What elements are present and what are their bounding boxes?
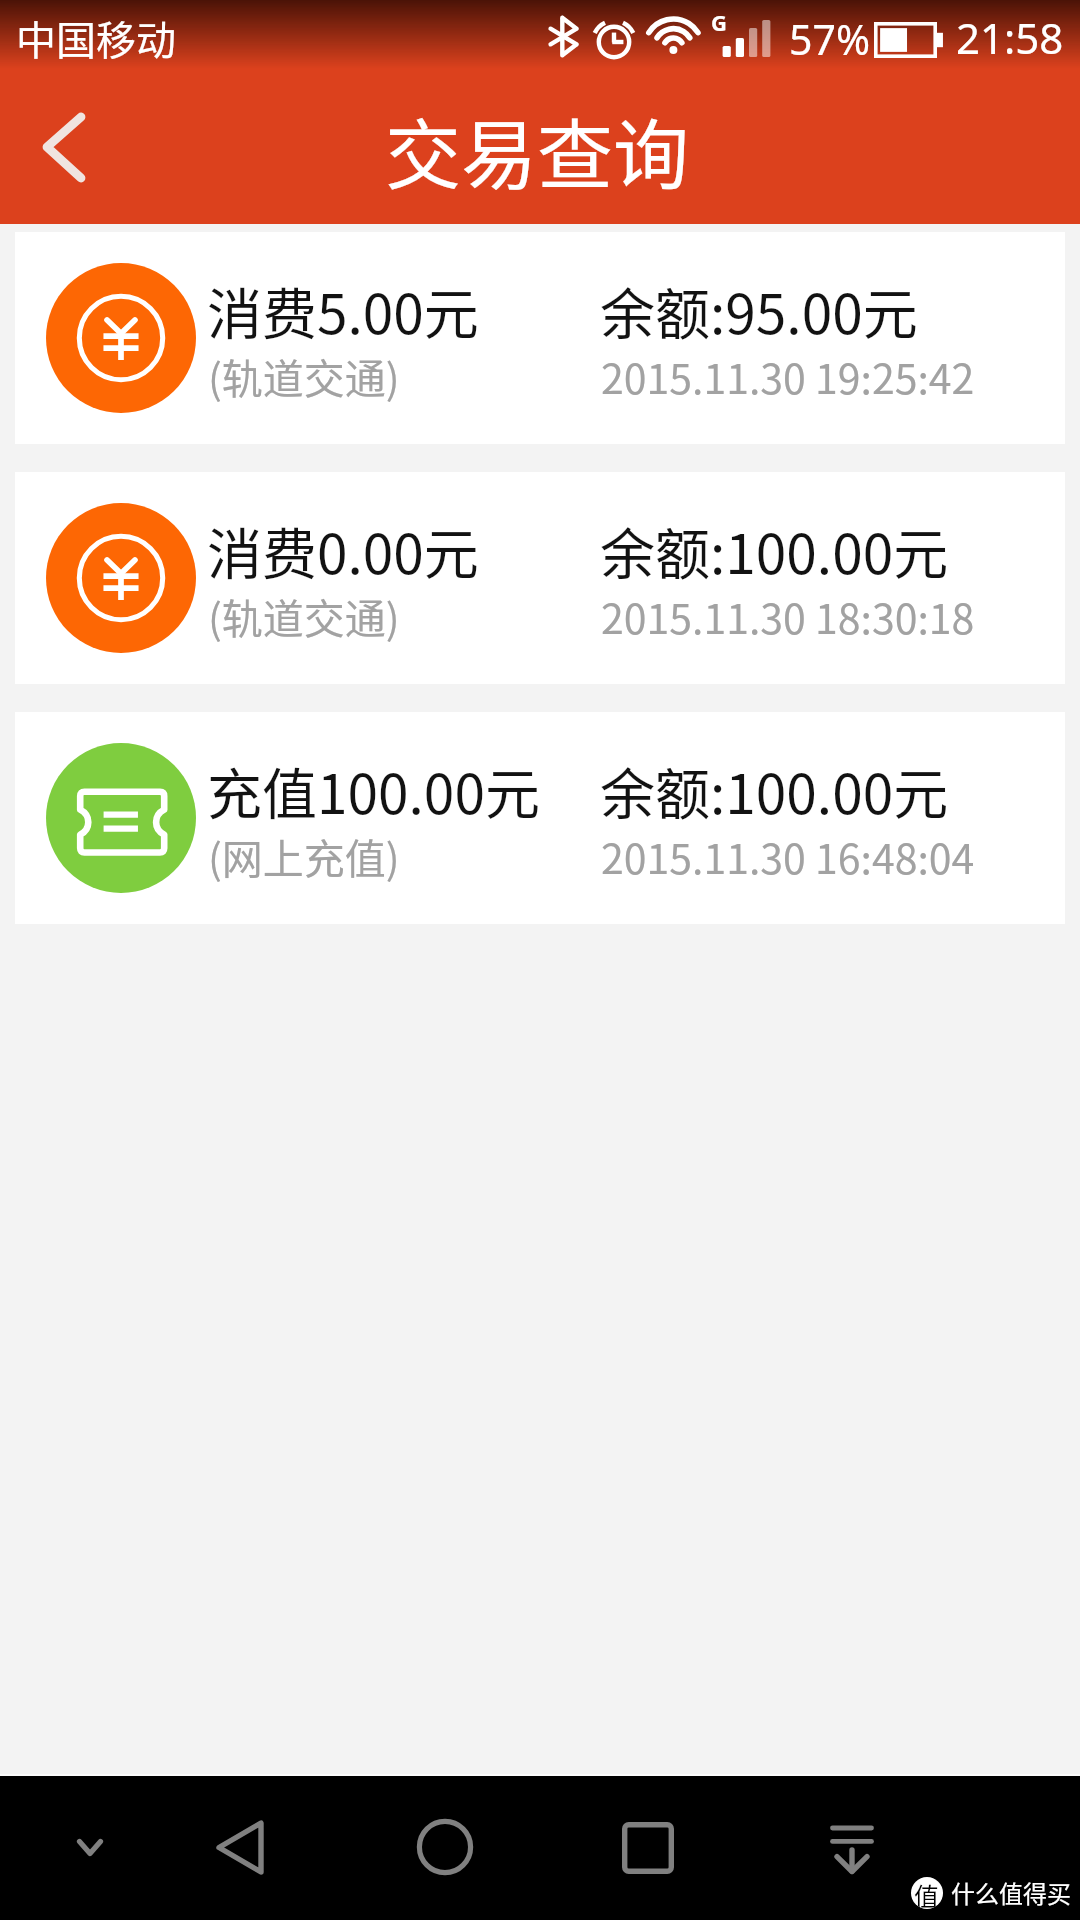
staticText: 充值100.00元: [207, 750, 540, 830]
button[interactable]: Hide keyboard: [35, 1792, 145, 1902]
staticText: (轨道交通): [208, 586, 400, 645]
staticText: 57%: [789, 11, 870, 67]
button[interactable]: Back: [185, 1792, 295, 1902]
button[interactable]: 充值100.00元: [15, 712, 1065, 924]
staticText: 交易查询: [385, 95, 689, 205]
staticText: 什么值得买: [951, 1875, 1071, 1910]
staticText: 余额:100.00元: [600, 510, 949, 590]
staticText: 21:58: [956, 9, 1064, 66]
staticText: 中国移动: [16, 9, 176, 67]
button[interactable]: Home: [390, 1792, 500, 1902]
staticText: 2015.11.30 19:25:42: [601, 346, 975, 405]
staticText: (网上充值): [208, 826, 400, 885]
staticText: 消费0.00元: [207, 510, 479, 590]
staticText: 2015.11.30 16:48:04: [601, 826, 975, 885]
button[interactable]: Back: [0, 88, 128, 224]
button[interactable]: Collapse: [797, 1794, 907, 1904]
staticText: 消费5.00元: [207, 270, 479, 350]
staticText: 2015.11.30 18:30:18: [601, 586, 975, 645]
button[interactable]: 消费5.00元: [15, 232, 1065, 444]
button[interactable]: Recent apps: [593, 1793, 703, 1903]
staticText: 余额:100.00元: [600, 750, 949, 830]
staticText: 值: [914, 1877, 940, 1909]
staticText: G: [711, 7, 727, 37]
staticText: 余额:95.00元: [600, 270, 918, 350]
staticText: (轨道交通): [208, 346, 400, 405]
button[interactable]: 消费0.00元: [15, 472, 1065, 684]
